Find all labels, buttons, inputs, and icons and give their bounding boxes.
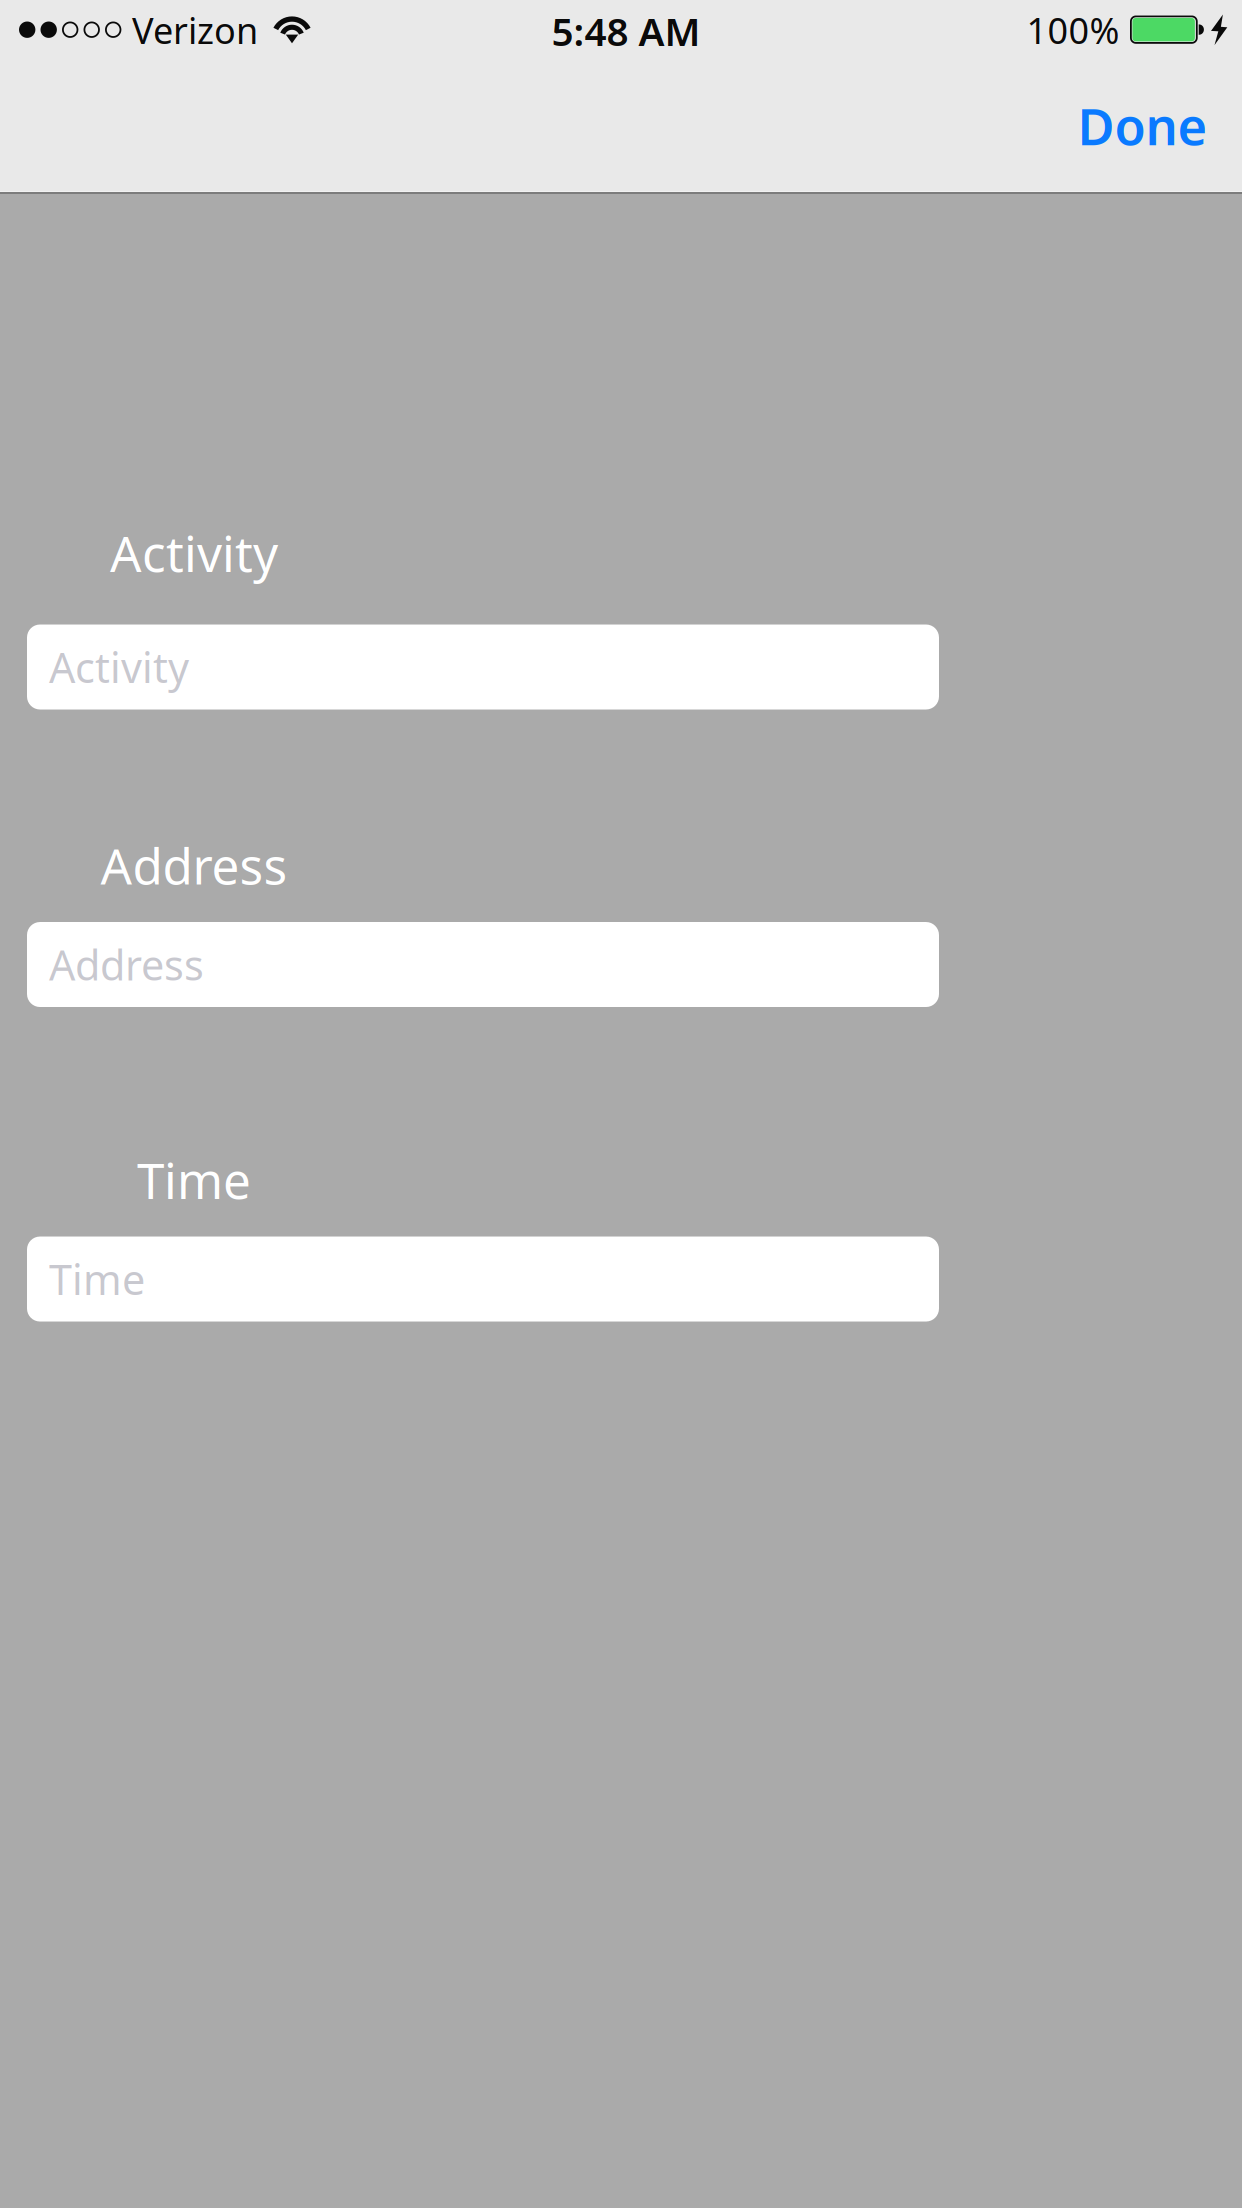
button[interactable]: Done — [1064, 90, 1221, 160]
staticText: Time — [49, 1252, 145, 1306]
staticText: Verizon — [132, 6, 258, 54]
button[interactable]: Address — [27, 922, 939, 1007]
staticText: 5:48 AM — [551, 5, 700, 57]
staticText: Time — [137, 1147, 251, 1212]
staticText: 100% — [1026, 6, 1119, 54]
staticText: Activity — [110, 520, 278, 585]
staticText: Address — [100, 832, 287, 898]
staticText: Address — [49, 937, 204, 992]
button[interactable]: Activity — [27, 624, 939, 709]
staticText: Done — [1077, 92, 1207, 159]
button[interactable]: Time — [27, 1236, 939, 1321]
staticText: Activity — [49, 640, 189, 694]
